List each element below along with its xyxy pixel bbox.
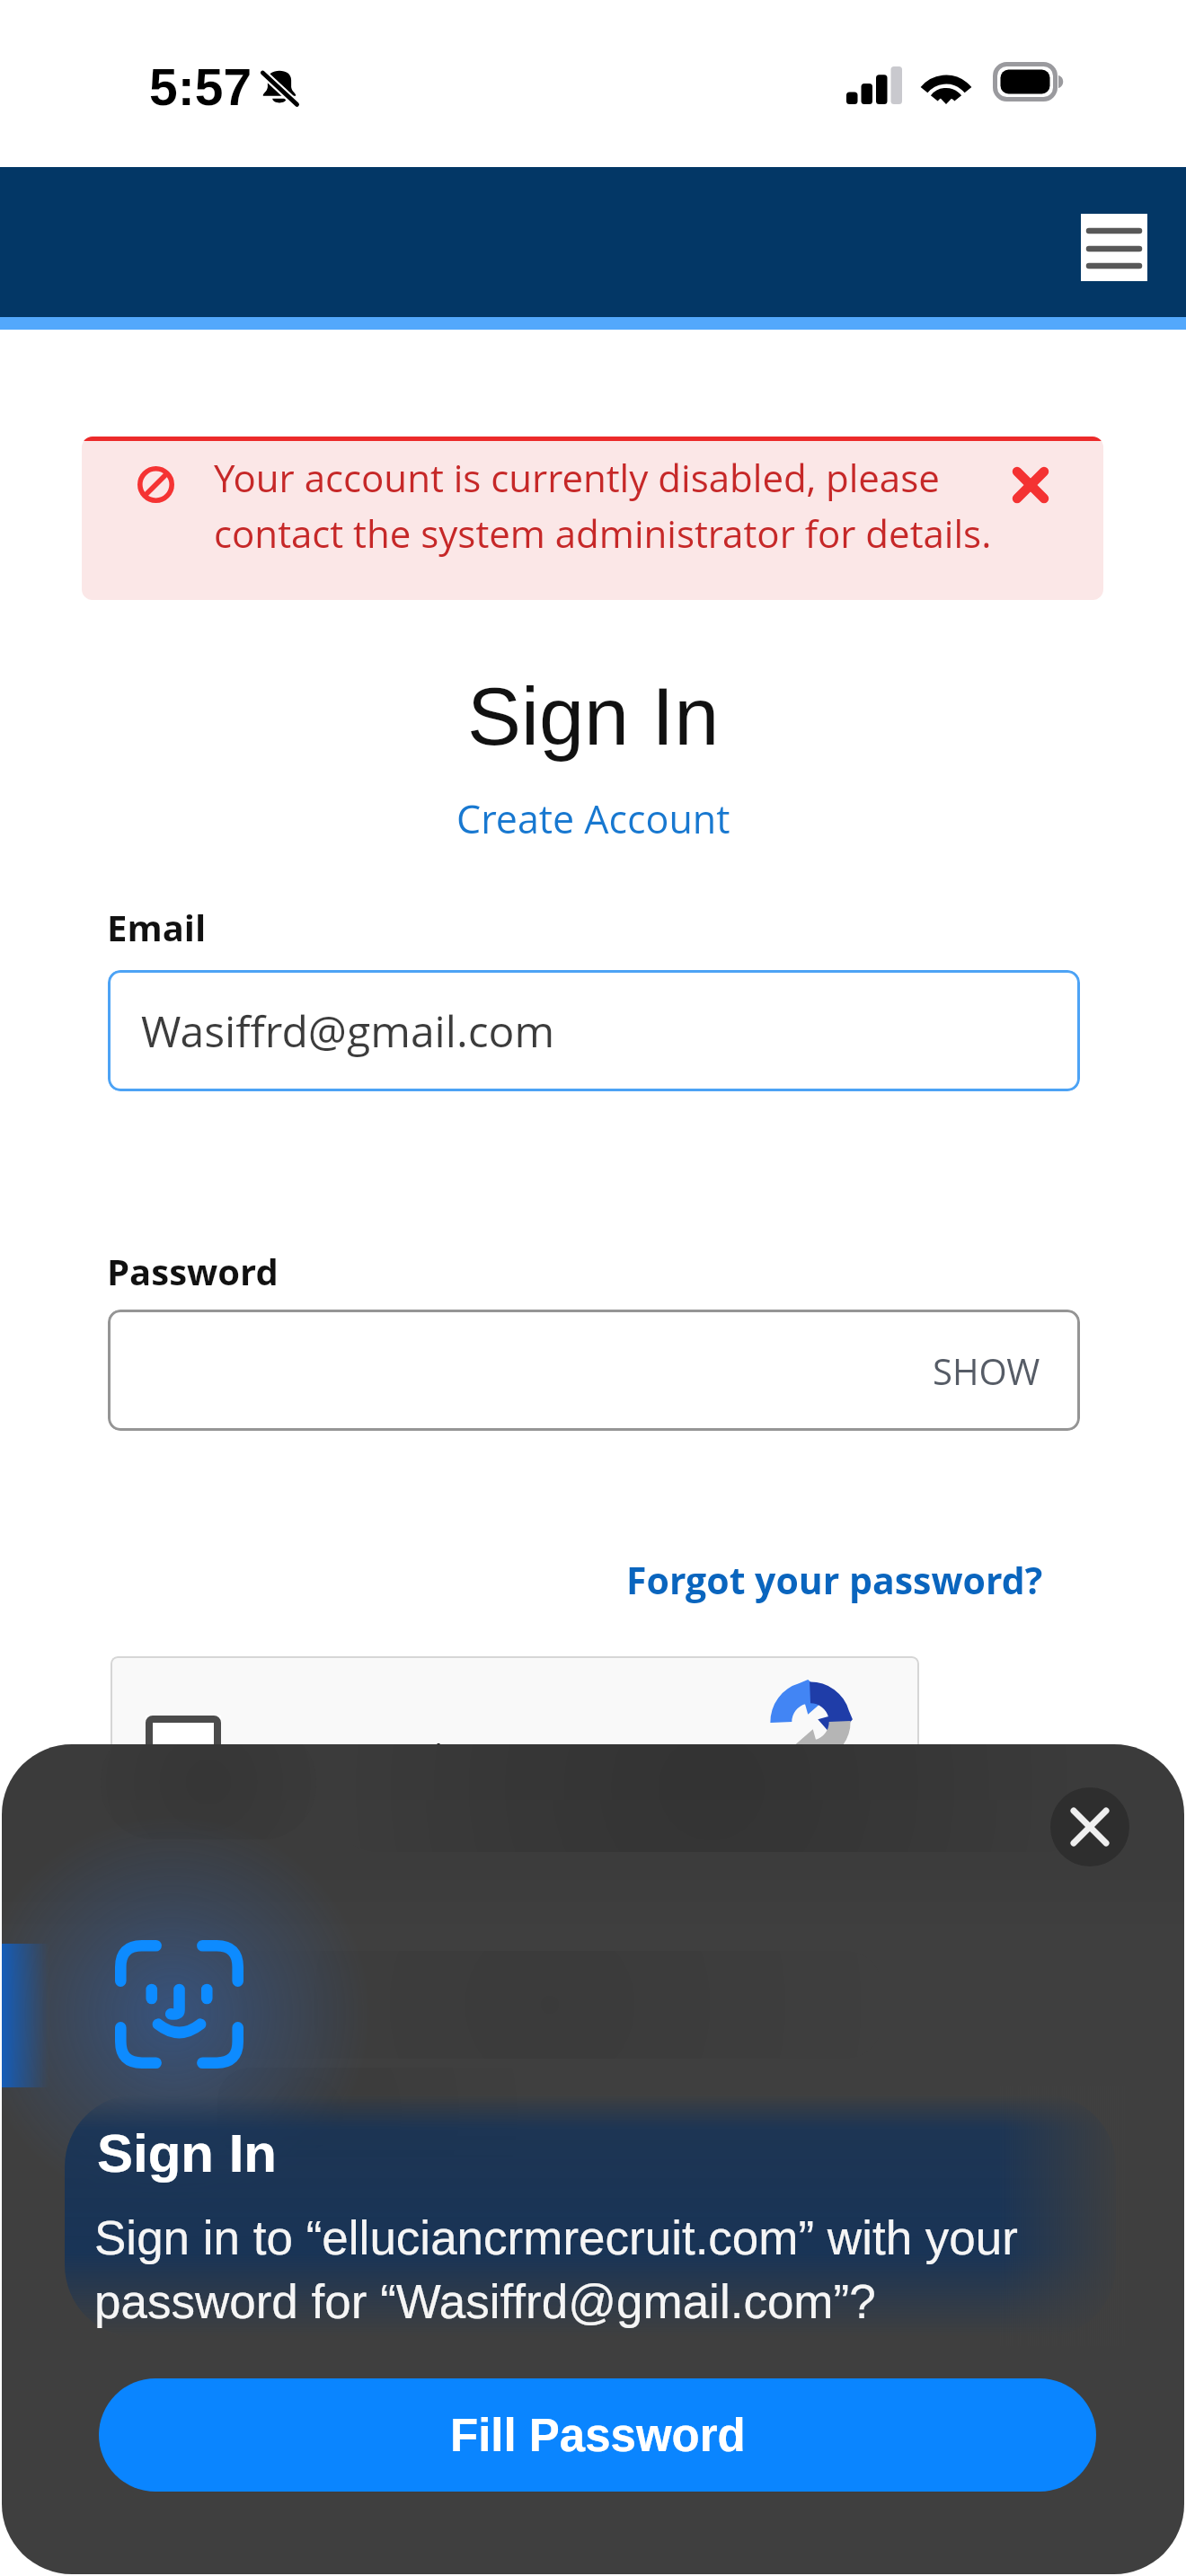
button[interactable]: Your account is currently disabled, plea… xyxy=(82,437,1103,600)
button[interactable]: Dismiss xyxy=(1003,457,1058,513)
button[interactable]: SHOW xyxy=(906,1332,1080,1409)
staticText: Wasiffrd@gmail.com xyxy=(141,1001,555,1060)
button[interactable]: SHOW xyxy=(108,1310,1080,1431)
button[interactable]: Wasiffrd@gmail.com xyxy=(108,970,1080,1091)
staticText: Fill Password xyxy=(450,2410,746,2461)
staticText: Sign In xyxy=(97,2123,277,2183)
staticText: SHOW xyxy=(933,1346,1040,1395)
button[interactable]: Create Account xyxy=(447,789,739,849)
button[interactable]: Close xyxy=(1050,1787,1129,1866)
staticText: Forgot your password? xyxy=(626,1555,1043,1605)
button[interactable]: Forgot your password? xyxy=(621,1551,1049,1609)
button[interactable]: Fill Password xyxy=(99,2378,1096,2492)
staticText: I'm not a robot xyxy=(243,1733,491,1781)
staticText: Your account is currently disabled, plea… xyxy=(214,452,1022,560)
button[interactable]: Menu xyxy=(1081,214,1147,281)
staticText: Create Account xyxy=(456,792,730,845)
staticText: Sign in to “elluciancrmrecruit.com” with… xyxy=(94,2211,1018,2328)
staticText: 5:57 xyxy=(149,58,252,116)
staticText: Password xyxy=(107,1247,279,1295)
staticText: Email xyxy=(107,903,207,951)
staticText: Sign In xyxy=(467,672,720,763)
